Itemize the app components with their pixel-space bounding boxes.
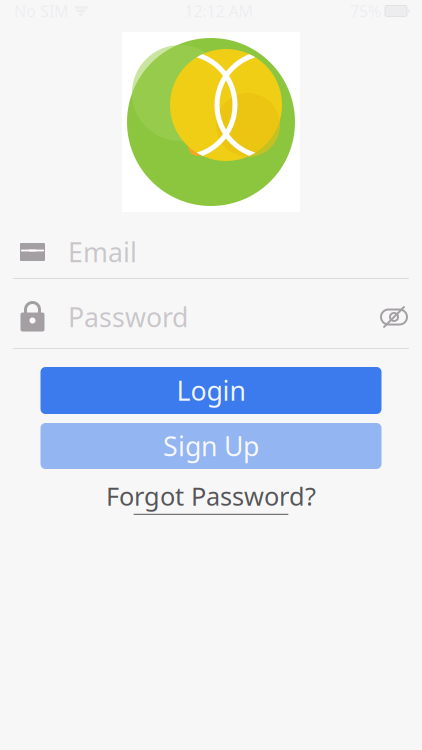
staticText: Email (68, 234, 137, 270)
staticText: No SIM (14, 0, 69, 22)
button[interactable]: Sign Up (40, 423, 381, 469)
button[interactable]: Forgot Password? (106, 482, 316, 512)
staticText: Password (68, 299, 188, 335)
button[interactable]: Login (40, 367, 381, 414)
button[interactable]: Show password (372, 295, 416, 339)
staticText: Sign Up (163, 428, 259, 464)
staticText: Login (176, 373, 245, 408)
staticText: Forgot Password? (106, 479, 316, 513)
